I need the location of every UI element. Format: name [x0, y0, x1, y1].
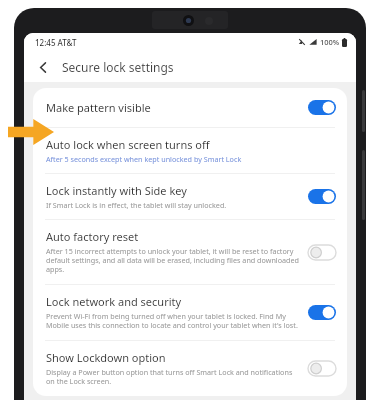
button[interactable]: On	[308, 305, 336, 320]
button[interactable]: Auto factory reset	[33, 220, 347, 284]
staticText: Make pattern visible	[46, 100, 151, 115]
button[interactable]: Off	[308, 361, 336, 376]
staticText: Auto factory reset	[46, 229, 139, 244]
button[interactable]: Lock instantly with Side key	[33, 174, 347, 219]
button[interactable]: Make pattern visible	[33, 88, 347, 127]
staticText: 12:45 AT&T	[35, 37, 77, 48]
staticText: Lock network and security	[46, 294, 182, 309]
button[interactable]: Off	[308, 245, 336, 260]
staticText: Prevent Wi-Fi from being turned off when…	[46, 311, 300, 331]
staticText: Secure lock settings	[62, 59, 174, 75]
button[interactable]: Show Lockdown option	[33, 341, 347, 396]
staticText: Display a Power button option that turns…	[46, 367, 300, 387]
staticText: If Smart Lock is in effect, the tablet w…	[46, 200, 227, 210]
staticText: Lock instantly with Side key	[46, 183, 187, 198]
staticText: After 5 seconds except when kept unlocke…	[46, 154, 242, 164]
staticText: 100%	[320, 37, 340, 47]
button[interactable]: On	[308, 100, 336, 115]
button[interactable]: Lock network and security	[33, 285, 347, 340]
staticText: Show Lockdown option	[46, 350, 166, 365]
staticText: Auto lock when screen turns off	[46, 137, 210, 152]
button[interactable]: Back	[30, 54, 56, 80]
button[interactable]: Auto lock when screen turns off	[33, 128, 347, 173]
button[interactable]: On	[308, 189, 336, 204]
staticText: After 15 incorrect attempts to unlock yo…	[46, 246, 300, 275]
